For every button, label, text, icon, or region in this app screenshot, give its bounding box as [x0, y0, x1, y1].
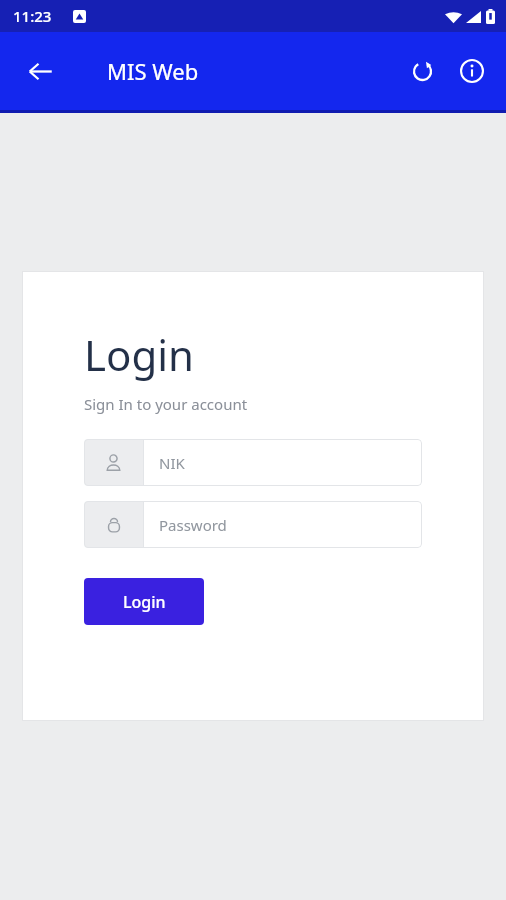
staticText: MIS Web	[107, 56, 199, 86]
button[interactable]: NIK	[84, 439, 422, 486]
button[interactable]: Back	[17, 48, 63, 94]
staticText: Login	[123, 591, 166, 613]
staticText: 11:23	[13, 6, 52, 26]
staticText: Login	[84, 326, 195, 383]
staticText: NIK	[159, 453, 185, 473]
staticText: Sign In to your account	[84, 394, 248, 414]
button[interactable]: Password	[84, 501, 422, 548]
button[interactable]: Info	[447, 46, 497, 96]
button[interactable]: Login	[84, 578, 204, 625]
staticText: Password	[159, 515, 227, 535]
button[interactable]: Refresh	[397, 46, 447, 96]
